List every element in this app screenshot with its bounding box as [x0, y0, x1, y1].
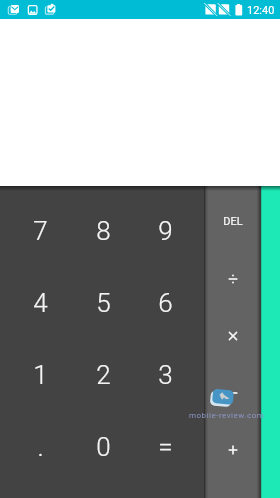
staticText: mobile-review.com	[189, 411, 265, 420]
button[interactable]: Subtract	[205, 364, 261, 421]
button[interactable]: 3	[134, 339, 196, 411]
button[interactable]: 9	[134, 195, 196, 267]
staticText: 0	[96, 432, 111, 462]
button[interactable]: DEL	[205, 193, 261, 250]
staticText: =	[158, 432, 173, 462]
button[interactable]: Divide	[205, 250, 261, 307]
button[interactable]: 2	[72, 339, 134, 411]
staticText: 2	[96, 360, 111, 390]
staticText: 1	[33, 360, 48, 390]
button[interactable]: 7	[9, 195, 72, 267]
staticText: 4	[33, 288, 48, 318]
button[interactable]: 4	[9, 267, 72, 339]
staticText: .	[37, 432, 44, 462]
staticText: 12:40	[247, 4, 275, 17]
staticText: 6	[158, 288, 173, 318]
staticText: 9	[158, 216, 173, 246]
button[interactable]: Multiply	[205, 307, 261, 364]
button[interactable]: 0	[72, 411, 134, 483]
staticText: 7	[33, 216, 48, 246]
button[interactable]: 6	[134, 267, 196, 339]
button[interactable]: 8	[72, 195, 134, 267]
button[interactable]: Open advanced pad	[261, 186, 280, 498]
button[interactable]: 5	[72, 267, 134, 339]
button[interactable]: .	[9, 411, 72, 483]
staticText: 3	[158, 360, 173, 390]
staticText: 8	[96, 216, 111, 246]
staticText: DEL	[223, 215, 243, 228]
staticText: 5	[96, 288, 111, 318]
button[interactable]: Add	[205, 421, 261, 478]
button[interactable]: 1	[9, 339, 72, 411]
button[interactable]: =	[134, 411, 196, 483]
